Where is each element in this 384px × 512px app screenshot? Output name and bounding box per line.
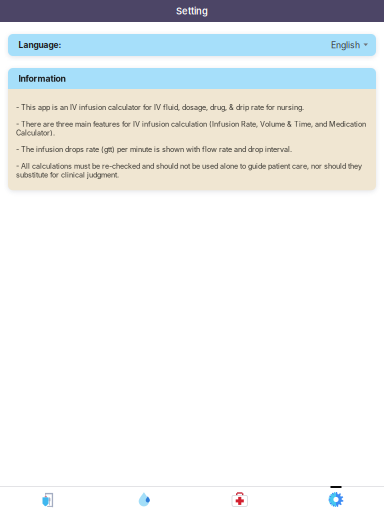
button[interactable]: Language: bbox=[8, 34, 376, 56]
button[interactable]: Drip Rate bbox=[96, 487, 192, 512]
staticText: Information bbox=[18, 73, 65, 84]
button[interactable]: Setting bbox=[288, 487, 384, 512]
staticText: - This app is an IV infusion calculator … bbox=[16, 103, 304, 112]
staticText: - There are three main features for IV i… bbox=[16, 120, 366, 137]
staticText: English bbox=[331, 40, 360, 50]
button[interactable]: Medication bbox=[192, 487, 288, 512]
staticText: - The infusion drops rate (gtt) per minu… bbox=[16, 145, 292, 154]
button[interactable]: Infusion Rate bbox=[0, 487, 96, 512]
staticText: Language: bbox=[18, 40, 61, 50]
staticText: Setting bbox=[176, 5, 208, 17]
staticText: - All calculations must be re-checked an… bbox=[16, 162, 362, 179]
